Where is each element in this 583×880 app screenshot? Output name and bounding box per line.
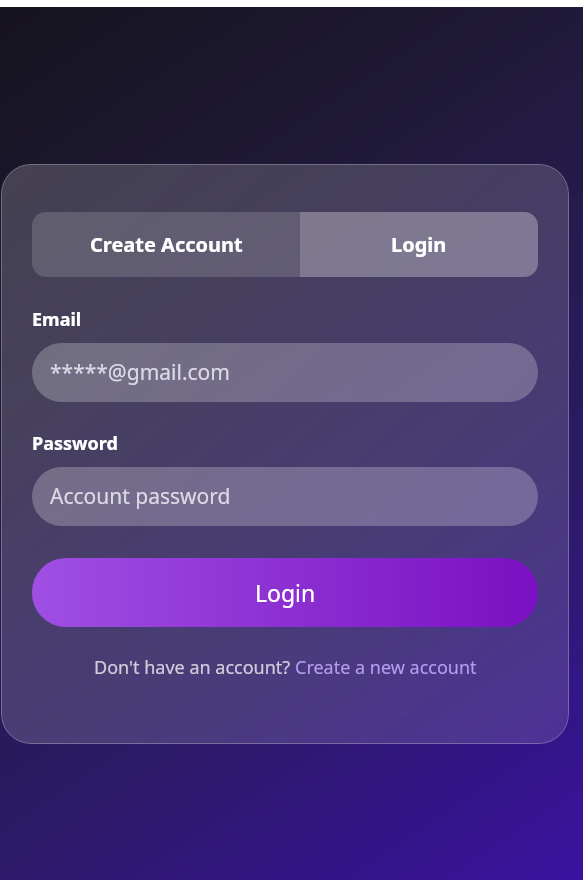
button[interactable]: Login — [32, 558, 538, 627]
button[interactable]: Password field — [32, 467, 538, 526]
staticText: Login — [391, 231, 447, 258]
staticText: Create a new account — [295, 655, 477, 680]
staticText: Login — [255, 577, 316, 608]
staticText: Don't have an account? — [94, 655, 295, 680]
staticText: Password — [32, 431, 118, 456]
button[interactable]: Login — [300, 212, 538, 277]
staticText: Account password — [50, 482, 231, 511]
button[interactable]: Don't have an account? — [1, 655, 569, 680]
button[interactable]: Email field — [32, 343, 538, 402]
staticText: Create Account — [90, 231, 243, 258]
button[interactable]: Create Account — [32, 212, 300, 277]
staticText: Email — [32, 307, 82, 332]
staticText: *****@gmail.com — [50, 358, 230, 387]
